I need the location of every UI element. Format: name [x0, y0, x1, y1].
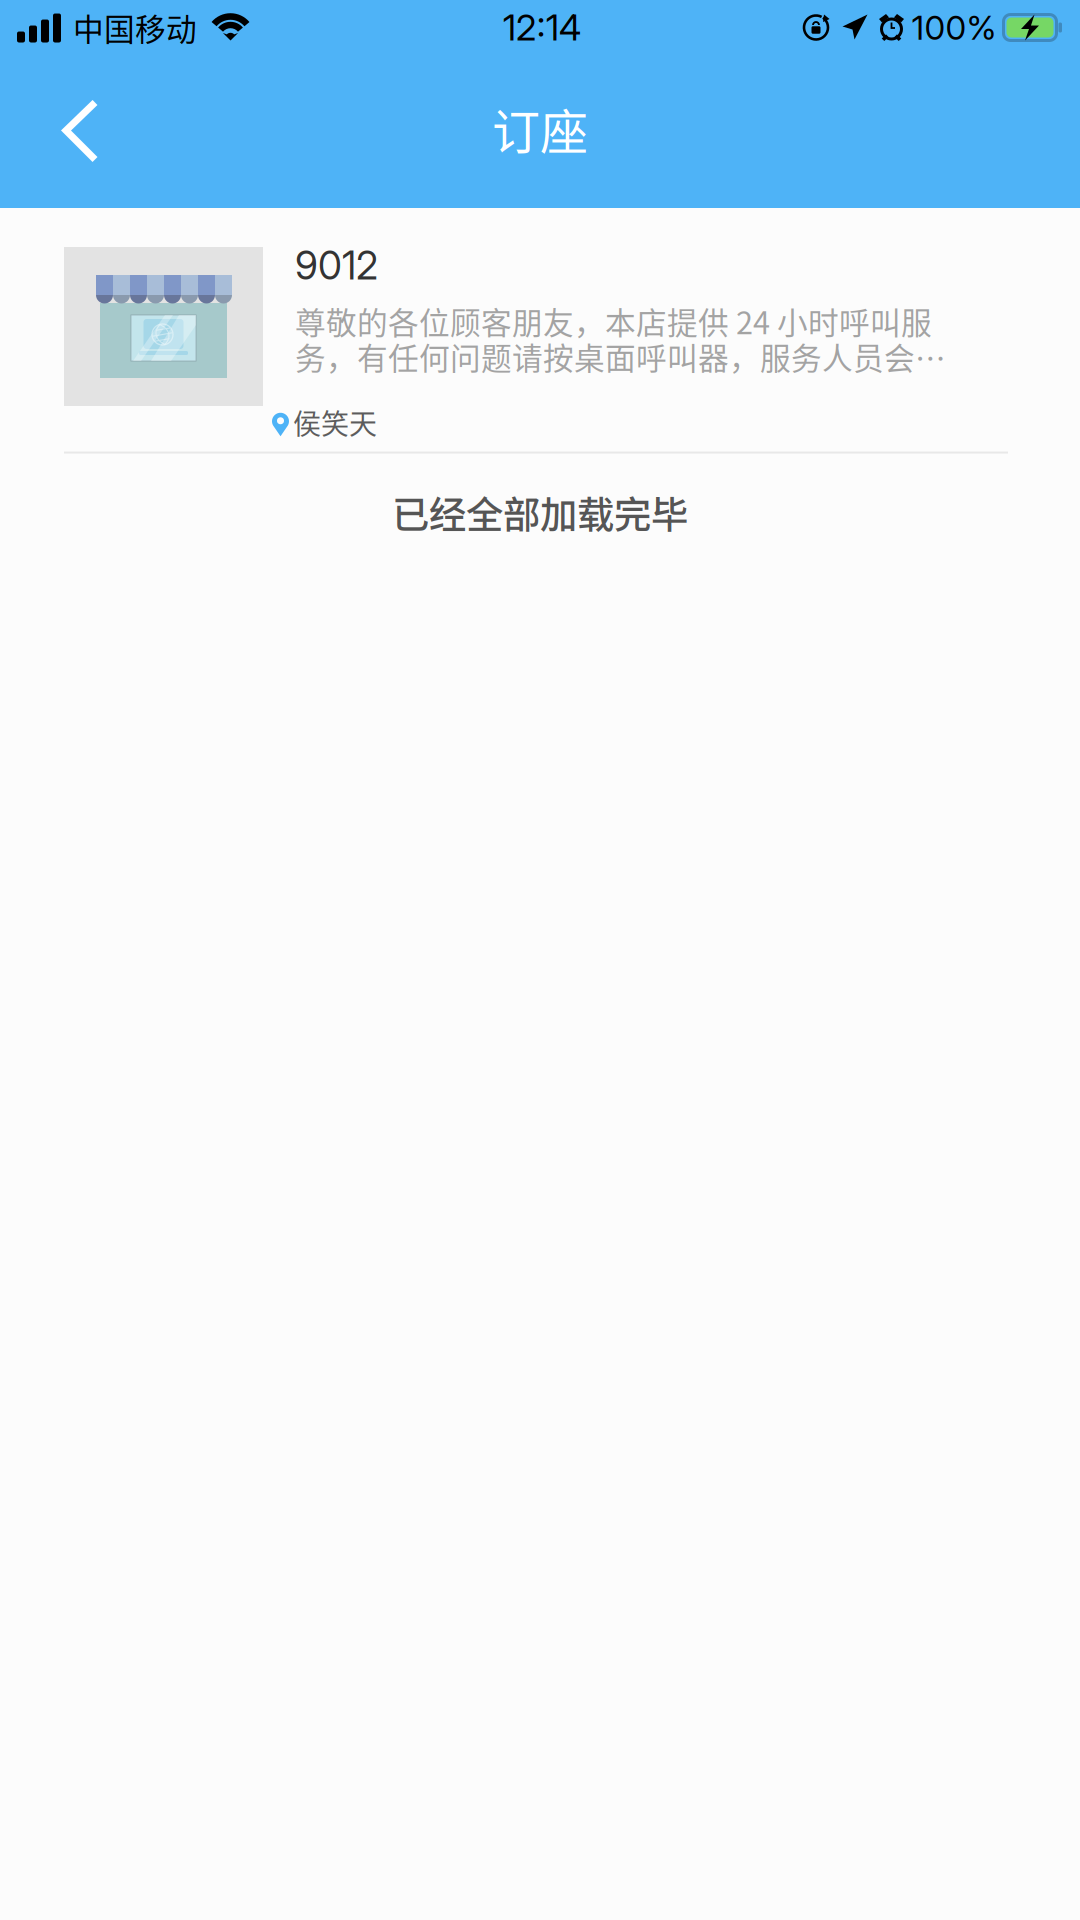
button[interactable]: 返回: [24, 73, 138, 189]
staticText: 12:14: [503, 6, 582, 49]
button[interactable]: 9012: [0, 208, 1080, 453]
staticText: 9012: [295, 242, 378, 289]
staticText: 侯笑天: [293, 402, 377, 442]
staticText: 订座: [492, 94, 588, 163]
staticText: 中国移动: [73, 5, 197, 50]
staticText: 尊敬的各位顾客朋友，本店提供 24 小时呼叫服务，有任何问题请按桌面呼叫器，服务…: [295, 299, 946, 379]
staticText: 100%: [911, 7, 996, 48]
staticText: 已经全部加载完毕: [392, 485, 688, 540]
